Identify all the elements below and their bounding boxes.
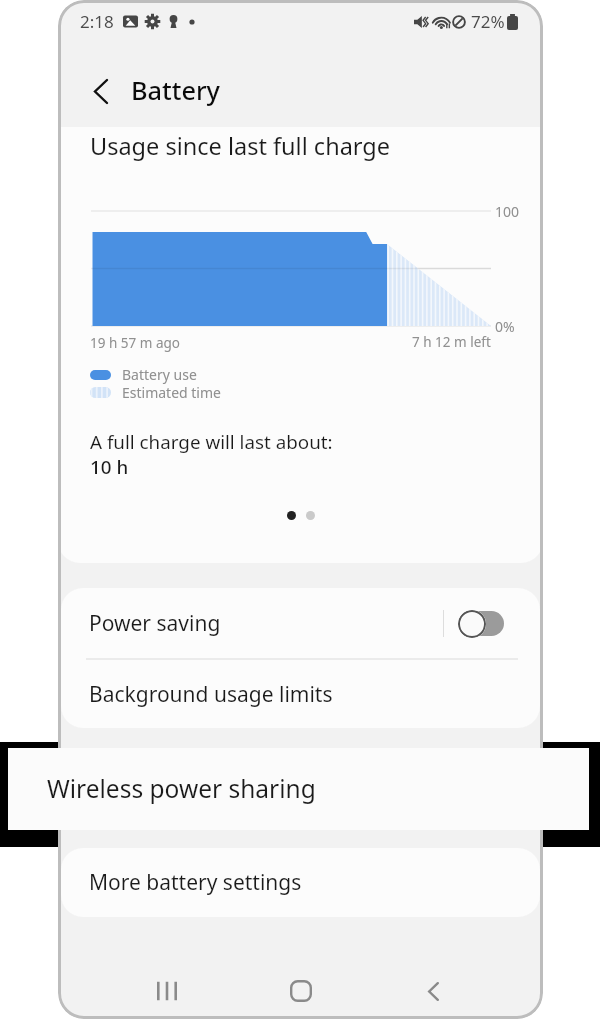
staticText: Usage since last full charge xyxy=(90,130,391,162)
staticText: 72% xyxy=(471,10,505,33)
staticText: Background usage limits xyxy=(89,680,333,709)
button[interactable]: Back xyxy=(399,957,467,1019)
staticText: A full charge will last about: xyxy=(90,429,333,455)
staticText: Wireless power sharing xyxy=(47,772,316,805)
staticText: 19 h 57 m ago xyxy=(90,334,180,352)
staticText: 2:18 xyxy=(80,10,114,33)
button[interactable]: Power saving xyxy=(61,588,540,658)
staticText: 7 h 12 m left xyxy=(412,333,491,351)
button[interactable]: Home xyxy=(267,957,335,1019)
button[interactable]: Navigate up xyxy=(78,68,124,114)
staticText: Battery xyxy=(131,73,220,107)
staticText: 10 h xyxy=(90,454,129,480)
button[interactable]: Background usage limits xyxy=(61,660,540,728)
staticText: Estimated time xyxy=(122,383,221,402)
button[interactable]: Recent apps xyxy=(133,957,201,1019)
staticText: 100 xyxy=(495,202,520,221)
staticText: Power saving xyxy=(89,609,221,638)
button[interactable]: Wireless power sharing xyxy=(8,748,589,830)
staticText: 0% xyxy=(495,317,515,336)
button[interactable]: More battery settings xyxy=(61,848,540,917)
staticText: More battery settings xyxy=(89,868,302,897)
staticText: Battery use xyxy=(122,365,197,384)
